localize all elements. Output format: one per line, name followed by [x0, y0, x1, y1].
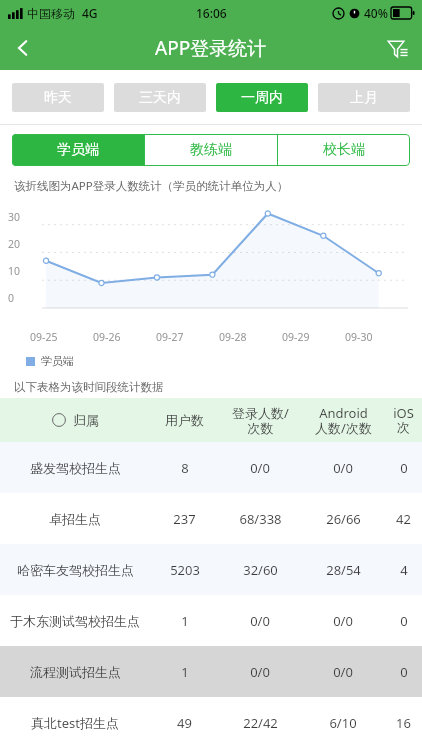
button[interactable]: 一周内	[216, 83, 308, 112]
staticText: 登录人数/ 次数	[232, 404, 289, 437]
staticText: 用户数	[165, 412, 204, 428]
staticText: 0/0	[333, 459, 353, 477]
staticText: 0/0	[333, 612, 353, 630]
staticText: 哈密车友驾校招生点	[17, 562, 134, 578]
staticText: 中国移动	[27, 6, 75, 21]
button[interactable]: 学员端	[12, 134, 144, 166]
staticText: 26/66	[326, 510, 361, 528]
staticText: 22/42	[243, 714, 278, 732]
staticText: 0	[400, 459, 408, 477]
staticText: 0	[400, 612, 408, 630]
staticText: 68/338	[239, 510, 282, 528]
staticText: 09-26	[93, 330, 121, 344]
staticText: 30	[8, 210, 21, 224]
staticText: 一周内	[241, 89, 283, 107]
staticText: 三天内	[139, 89, 181, 107]
staticText: 09-30	[345, 330, 373, 344]
staticText: 于木东测试驾校招生点	[10, 613, 140, 629]
staticText: 该折线图为APP登录人数统计（学员的统计单位为人）	[14, 178, 289, 194]
staticText: 卓招生点	[49, 511, 101, 527]
button[interactable]: 盛发驾校招生点	[0, 442, 422, 493]
staticText: 16	[396, 714, 411, 732]
staticText: 09-28	[219, 330, 247, 344]
button[interactable]: 真北test招生点	[0, 697, 422, 748]
staticText: 上月	[350, 89, 378, 107]
staticText: 4	[400, 561, 408, 579]
button[interactable]: 教练端	[145, 134, 277, 166]
staticText: 教练端	[190, 141, 232, 159]
staticText: 0/0	[333, 663, 353, 681]
button[interactable]: 流程测试招生点	[0, 646, 422, 697]
staticText: 40%	[364, 5, 388, 21]
staticText: 学员端	[41, 354, 74, 368]
staticText: iOS 次	[393, 404, 414, 436]
staticText: 20	[8, 237, 21, 251]
staticText: 6/10	[329, 714, 357, 732]
button[interactable]: 上月	[318, 83, 410, 112]
button[interactable]: 卓招生点	[0, 493, 422, 544]
staticText: 盛发驾校招生点	[30, 460, 121, 476]
button[interactable]: 三天内	[114, 83, 206, 112]
button[interactable]: Back	[0, 26, 46, 70]
button[interactable]: 校长端	[278, 134, 410, 166]
staticText: 1	[181, 663, 189, 681]
staticText: 4G	[82, 5, 98, 21]
staticText: 归属	[73, 412, 99, 428]
staticText: 10	[8, 264, 21, 278]
staticText: 0	[400, 663, 408, 681]
staticText: 校长端	[323, 141, 365, 159]
staticText: 32/60	[243, 561, 278, 579]
staticText: 以下表格为该时间段统计数据	[14, 380, 164, 394]
staticText: 09-25	[30, 330, 58, 344]
staticText: 昨天	[44, 89, 72, 107]
staticText: APP登录统计	[155, 35, 267, 61]
staticText: Android 人数/次数	[315, 404, 372, 437]
staticText: 49	[177, 714, 192, 732]
button[interactable]: 昨天	[12, 83, 104, 112]
staticText: 0/0	[250, 459, 270, 477]
staticText: 流程测试招生点	[30, 664, 121, 680]
button[interactable]: Filter	[372, 26, 422, 70]
staticText: 真北test招生点	[31, 714, 119, 732]
staticText: 28/54	[326, 561, 361, 579]
button[interactable]: 哈密车友驾校招生点	[0, 544, 422, 595]
staticText: 09-27	[156, 330, 184, 344]
staticText: 16:06	[196, 5, 227, 21]
staticText: 0	[8, 291, 15, 305]
staticText: 学员端	[57, 141, 99, 159]
staticText: 42	[396, 510, 411, 528]
staticText: 0/0	[250, 663, 270, 681]
staticText: 237	[173, 510, 196, 528]
staticText: 1	[181, 612, 189, 630]
staticText: 09-29	[282, 330, 310, 344]
staticText: 8	[181, 459, 189, 477]
staticText: 0/0	[250, 612, 270, 630]
button[interactable]: 于木东测试驾校招生点	[0, 595, 422, 646]
staticText: 5203	[170, 561, 200, 579]
